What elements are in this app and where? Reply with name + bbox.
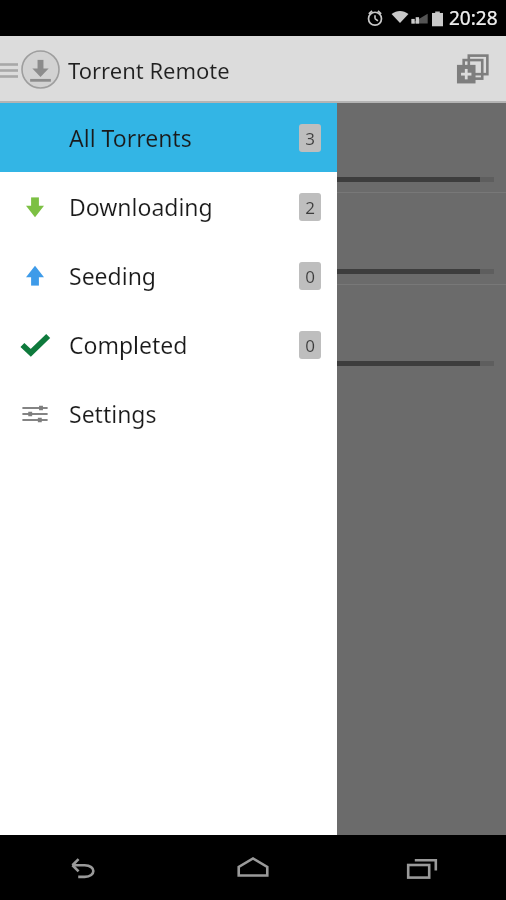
staticText: Downloading bbox=[69, 191, 299, 222]
staticText: debian-7.6.0-amd64.iso bbox=[14, 203, 245, 232]
button[interactable]: All Torrents bbox=[0, 103, 337, 172]
button[interactable]: Home bbox=[168, 835, 337, 900]
staticText: 20:28 bbox=[449, 5, 498, 31]
staticText: All Torrents bbox=[69, 122, 299, 153]
button[interactable]: Recent apps bbox=[337, 835, 506, 900]
button[interactable]: Open navigation drawer bbox=[0, 53, 25, 87]
button[interactable]: Seeding bbox=[0, 241, 337, 310]
staticText: 0 bbox=[305, 265, 315, 288]
staticText: Seeding bbox=[69, 260, 299, 291]
staticText: 1 minute, 49 seconds bbox=[14, 144, 194, 169]
button[interactable]: Settings bbox=[0, 379, 337, 448]
staticText: 2 bbox=[305, 196, 315, 219]
button[interactable]: debian-7.6.0-amd64.iso bbox=[0, 193, 506, 284]
staticText: Settings bbox=[69, 398, 299, 429]
staticText: 3 bbox=[305, 127, 315, 150]
button[interactable]: Add torrent bbox=[446, 44, 498, 96]
button[interactable]: Downloading bbox=[0, 172, 337, 241]
staticText: Completed bbox=[69, 329, 299, 360]
button[interactable]: linuxmint-17-cinnamon-64.iso bbox=[0, 285, 506, 376]
button[interactable]: ubuntu-14.04-desktop.iso bbox=[0, 103, 506, 192]
staticText: 0 bbox=[305, 334, 315, 357]
button[interactable]: Back bbox=[0, 835, 168, 900]
staticText: Torrent Remote bbox=[68, 55, 230, 85]
staticText: ubuntu-14.04-desktop.iso bbox=[14, 111, 267, 140]
button[interactable]: Completed bbox=[0, 310, 337, 379]
staticText: 5 minutes, 36 seconds bbox=[14, 328, 202, 353]
